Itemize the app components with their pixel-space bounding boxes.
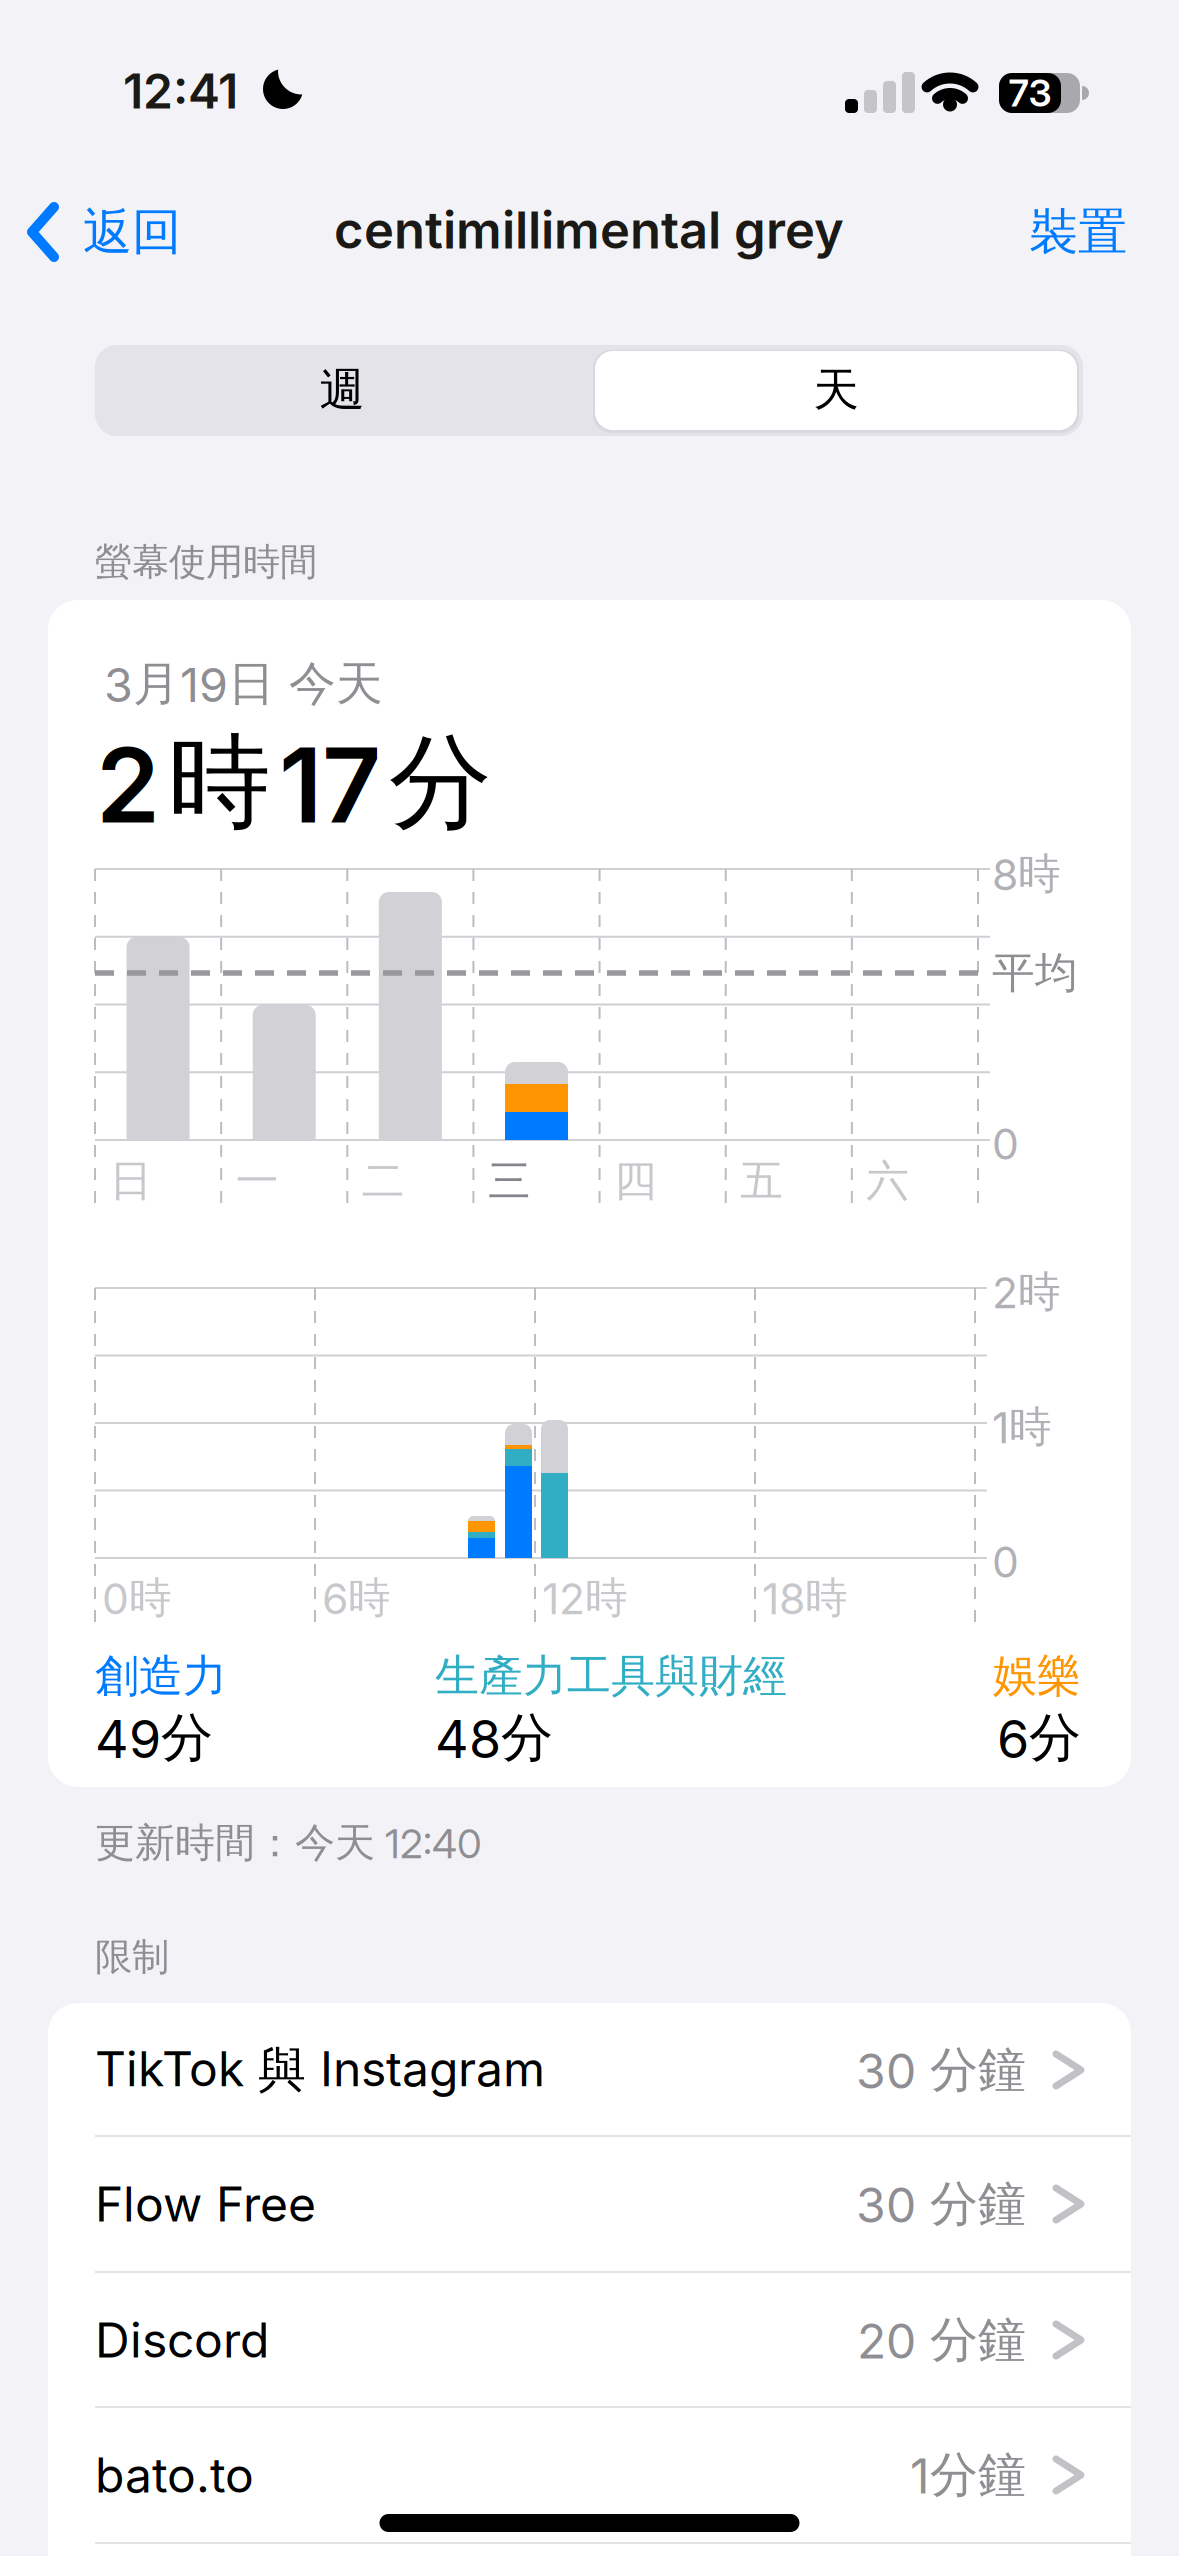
button[interactable]: 裝置: [907, 187, 1127, 277]
staticText: 生產力工具與財經: [435, 1649, 787, 1703]
button[interactable]: 返回: [28, 187, 278, 277]
staticText: 限制: [95, 1934, 169, 1980]
staticText: 0: [992, 1119, 1019, 1169]
staticText: 30 分鐘: [856, 2040, 1026, 2099]
staticText: 裝置: [1029, 202, 1127, 262]
staticText: 2 時 17 分: [96, 720, 492, 846]
staticText: 返回: [83, 202, 181, 262]
button[interactable]: Discord: [48, 2272, 1131, 2407]
staticText: 天: [813, 362, 858, 418]
staticText: 三: [488, 1155, 531, 1207]
staticText: 週: [319, 362, 364, 418]
button[interactable]: 天: [595, 350, 1077, 429]
staticText: 49分: [95, 1706, 213, 1770]
staticText: 3月19日 今天: [104, 655, 383, 713]
staticText: Flow Free: [95, 2176, 316, 2232]
staticText: TikTok 與 Instagram: [95, 2040, 545, 2100]
button[interactable]: bato.to: [48, 2407, 1131, 2542]
staticText: 平均: [992, 947, 1078, 999]
staticText: 一: [236, 1155, 279, 1207]
staticText: 20 分鐘: [857, 2310, 1026, 2369]
staticText: Discord: [95, 2312, 269, 2368]
staticText: 日: [109, 1155, 152, 1207]
button[interactable]: Flow Free: [48, 2136, 1131, 2271]
staticText: 30 分鐘: [856, 2174, 1026, 2233]
staticText: 二: [362, 1155, 405, 1207]
button[interactable]: TikTok 與 Instagram: [48, 2002, 1131, 2137]
staticText: 8時: [992, 848, 1061, 900]
staticText: 73: [1008, 71, 1051, 115]
staticText: 螢幕使用時間: [95, 539, 317, 585]
staticText: 0: [992, 1537, 1019, 1587]
staticText: 1時: [992, 1401, 1052, 1453]
staticText: 6分: [997, 1706, 1081, 1770]
button[interactable]: 週: [102, 344, 582, 435]
staticText: bato.to: [95, 2447, 254, 2503]
staticText: 48分: [435, 1706, 553, 1770]
staticText: 2時: [992, 1266, 1061, 1318]
staticText: 五: [740, 1155, 783, 1207]
staticText: 18時: [762, 1572, 848, 1624]
staticText: 娛樂: [993, 1649, 1081, 1703]
staticText: 更新時間：今天 12:40: [95, 1818, 482, 1867]
staticText: 四: [614, 1155, 657, 1207]
staticText: 創造力: [95, 1649, 227, 1703]
staticText: 6時: [322, 1572, 391, 1624]
staticText: 六: [866, 1155, 909, 1207]
staticText: 1分鐘: [910, 2445, 1026, 2504]
staticText: centimillimental grey: [334, 200, 844, 260]
staticText: 12:41: [123, 63, 238, 119]
staticText: 0時: [102, 1572, 172, 1624]
staticText: 12時: [542, 1572, 628, 1624]
